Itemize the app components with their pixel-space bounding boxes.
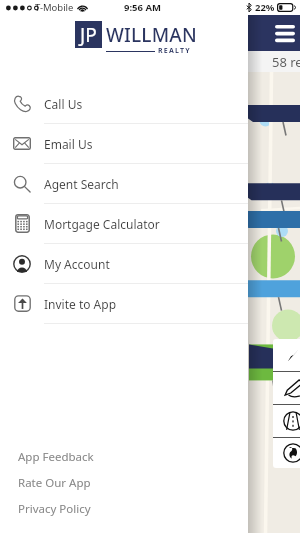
staticText: 9:56 AM	[124, 1, 161, 14]
button[interactable]: Agent Search	[0, 164, 248, 204]
button[interactable]: Map tool	[273, 372, 300, 404]
button[interactable]: Map tool	[273, 405, 300, 437]
staticText: T-Mobile	[35, 1, 74, 14]
button[interactable]: Open navigation menu	[272, 20, 298, 46]
staticText: Privacy Policy	[18, 501, 91, 517]
button[interactable]: Invite to App	[0, 284, 248, 324]
button[interactable]: My Account	[0, 244, 248, 284]
staticText: Email Us	[44, 136, 93, 152]
staticText: My Account	[44, 256, 110, 272]
staticText: WILLMAN	[106, 22, 197, 48]
button[interactable]: Call Us	[0, 84, 248, 124]
staticText: 22%	[255, 1, 275, 14]
button[interactable]: Privacy Policy	[0, 496, 248, 522]
staticText: REALTY	[158, 46, 191, 56]
button[interactable]: Mortgage Calculator	[0, 204, 248, 244]
staticText: Rate Our App	[18, 475, 91, 491]
button[interactable]: Map tool	[273, 438, 300, 468]
staticText: JP	[80, 22, 97, 48]
staticText: Mortgage Calculator	[44, 216, 160, 232]
button[interactable]: Map tool	[273, 339, 300, 371]
staticText: Invite to App	[44, 296, 117, 312]
button[interactable]: Rate Our App	[0, 470, 248, 496]
staticText: Agent Search	[44, 176, 119, 192]
staticText: Call Us	[44, 96, 83, 112]
staticText: App Feedback	[18, 449, 94, 465]
staticText: 58 results	[272, 53, 300, 71]
button[interactable]: App Feedback	[0, 444, 248, 470]
button[interactable]: Email Us	[0, 124, 248, 164]
